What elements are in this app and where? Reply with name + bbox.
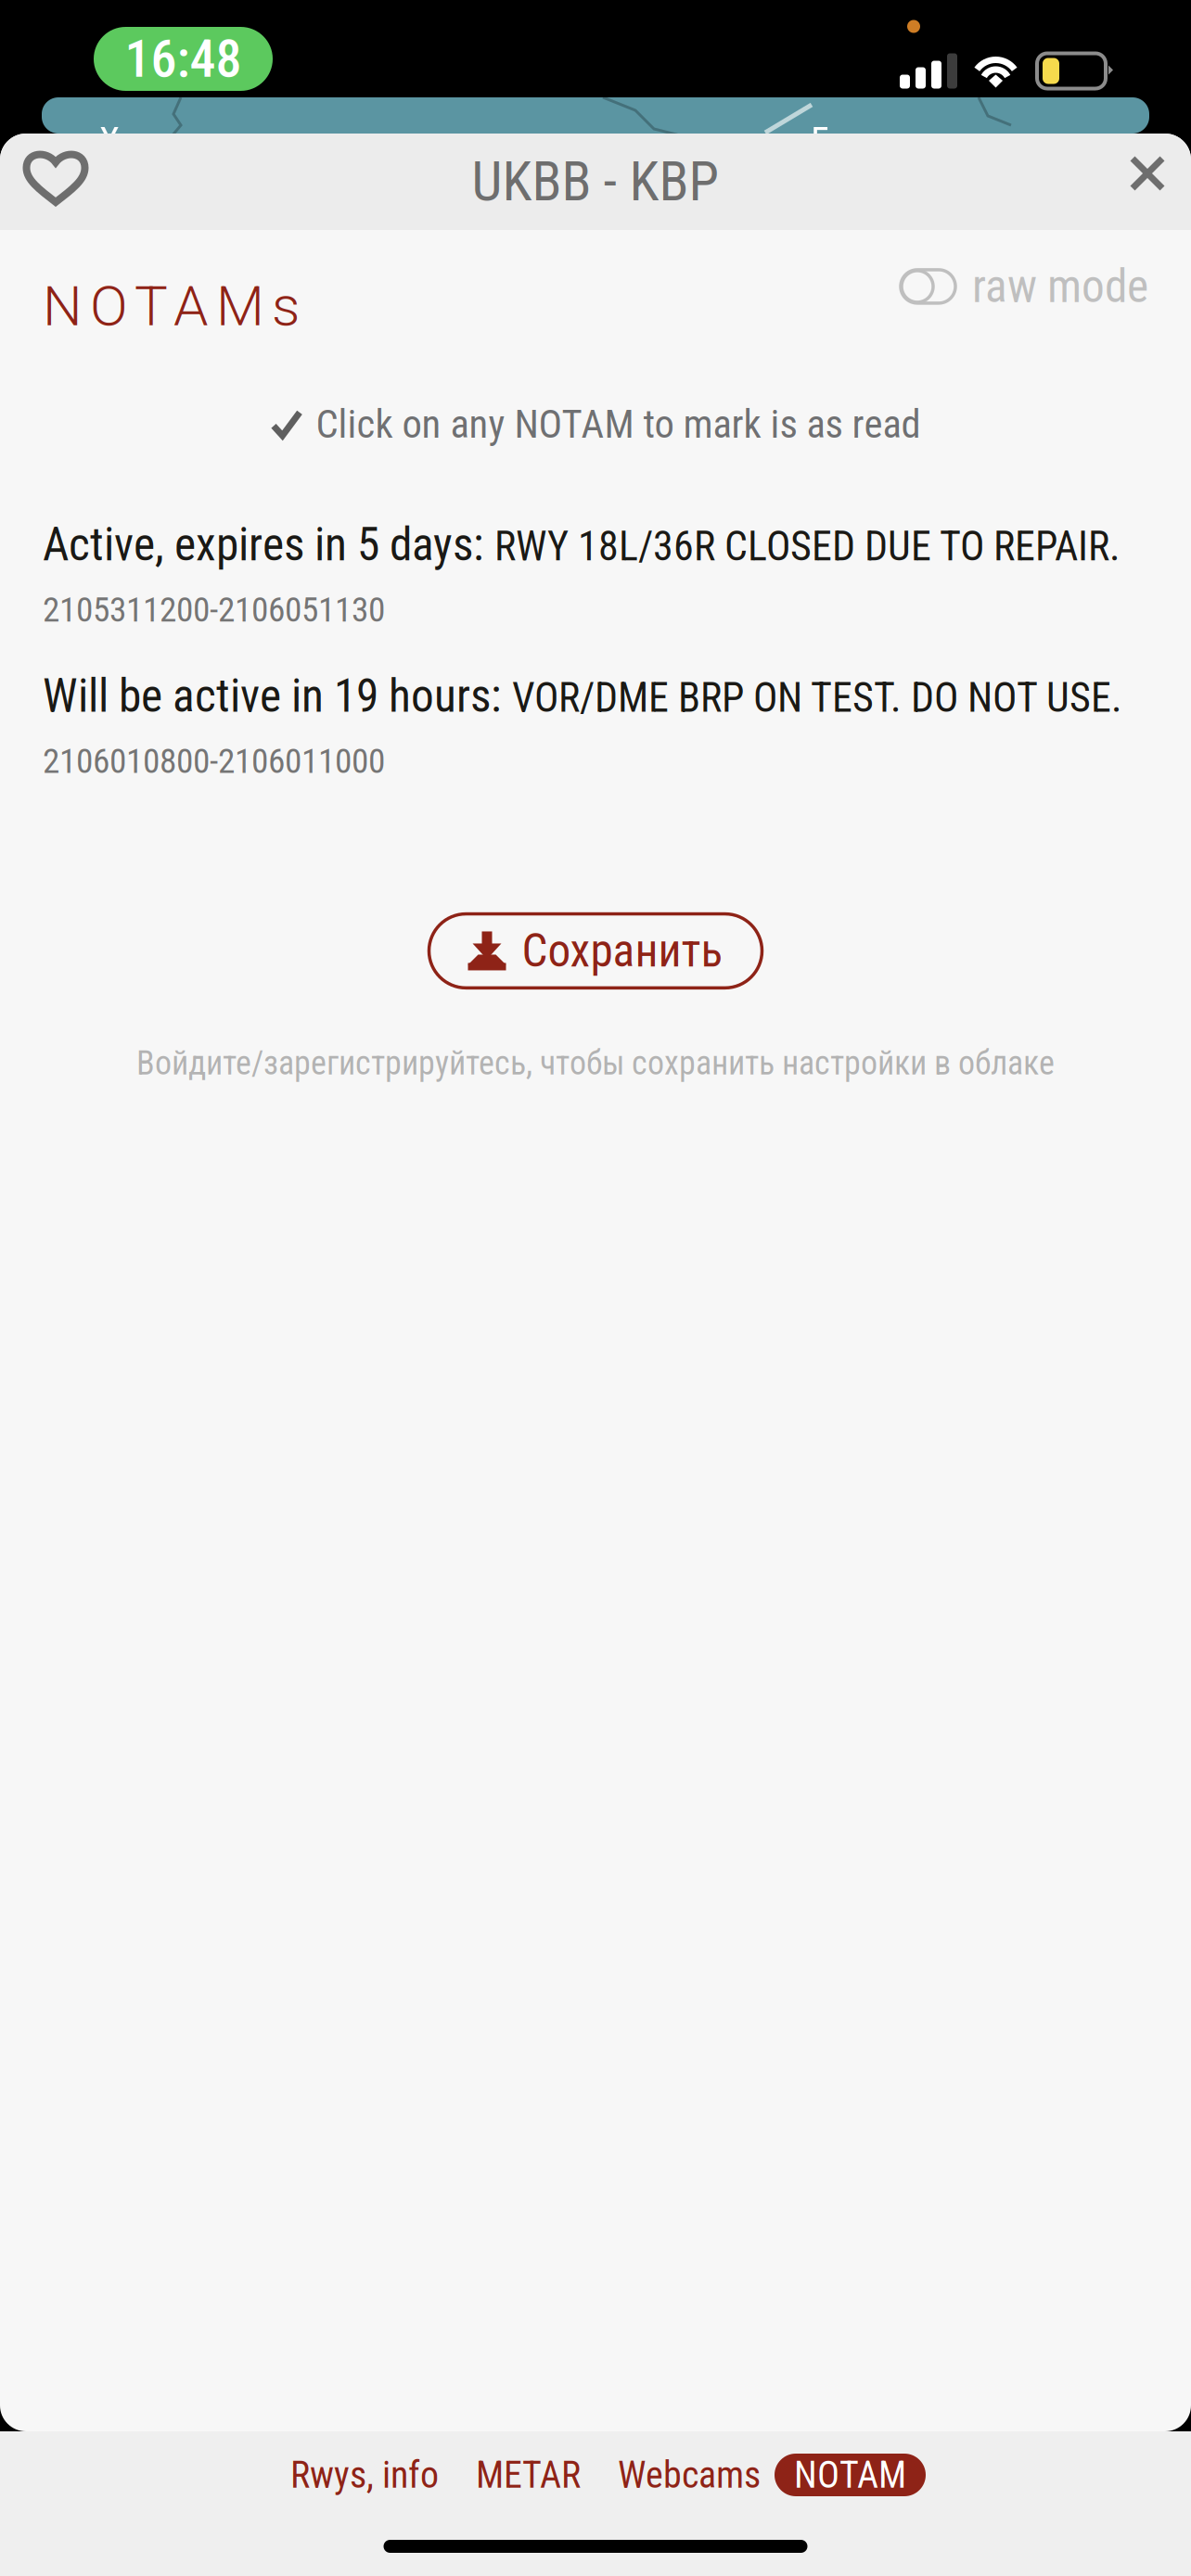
staticText: UKBB - KBP	[472, 150, 719, 214]
button[interactable]: Rwys, info	[288, 2454, 441, 2496]
button[interactable]: raw mode	[901, 260, 1148, 313]
button[interactable]: Add to favourites	[0, 134, 117, 230]
button[interactable]: METAR	[474, 2454, 583, 2496]
staticText: Webcams	[618, 2453, 761, 2497]
button[interactable]: Close	[1102, 134, 1191, 230]
staticText: 16:48	[125, 28, 242, 89]
staticText: Хм	[99, 120, 144, 163]
staticText: Active, expires in 5 days: RWY 18L/36R C…	[43, 519, 1121, 571]
button[interactable]: NOTAM	[775, 2454, 926, 2496]
staticText: NOTAM	[794, 2453, 906, 2497]
staticText: 2106010800-2106011000	[43, 741, 385, 781]
staticText: Rwys, info	[290, 2453, 439, 2497]
staticText: Сохранить	[522, 924, 723, 978]
staticText: raw mode	[972, 260, 1148, 313]
button[interactable]: Will be active in 19 hours: VOR/DME BRP …	[0, 670, 1191, 781]
staticText: Click on any NOTAM to mark is as read	[316, 401, 921, 447]
staticText: Will be active in 19 hours: VOR/DME BRP …	[43, 670, 1122, 722]
button[interactable]: Active, expires in 5 days: RWY 18L/36R C…	[0, 519, 1191, 630]
staticText: Городня	[811, 120, 936, 163]
staticText: METAR	[476, 2453, 581, 2497]
staticText: Войдите/зарегистрируйтесь, чтобы сохрани…	[136, 1044, 1055, 1083]
button[interactable]: Webcams	[616, 2454, 762, 2496]
staticText: NOTAMs	[43, 274, 300, 339]
button[interactable]: Сохранить	[429, 914, 762, 988]
staticText: 2105311200-2106051130	[43, 589, 385, 630]
